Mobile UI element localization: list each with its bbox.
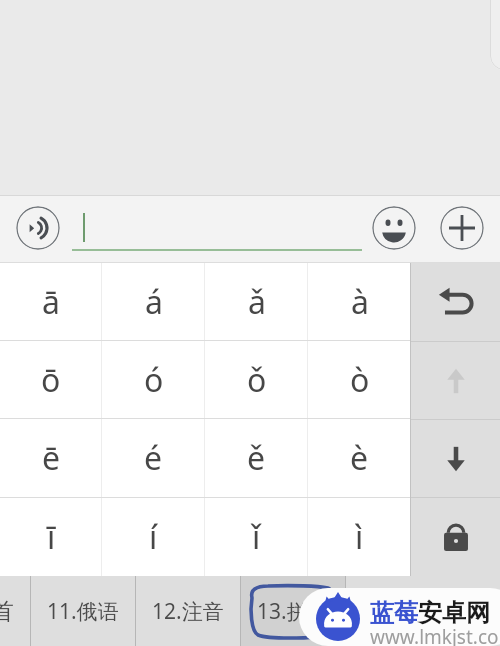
staticText: ó [144, 358, 164, 402]
button[interactable]: ǎ [205, 263, 308, 340]
staticText: è [350, 436, 369, 480]
button[interactable]: ě [205, 419, 308, 497]
staticText: ì [355, 515, 364, 559]
button[interactable]: ā [0, 263, 102, 340]
staticText: ē [42, 436, 61, 480]
button[interactable]: 12.注音 [136, 576, 240, 646]
button[interactable]: Lock [411, 498, 500, 576]
button[interactable]: Return [411, 263, 500, 342]
button[interactable]: ó [102, 341, 205, 418]
button[interactable]: ì [308, 498, 411, 576]
staticText: ǒ [247, 358, 267, 402]
staticText: 12.注音 [152, 597, 224, 626]
button[interactable]: ē [0, 419, 102, 497]
button[interactable]: í [102, 498, 205, 576]
staticText: ō [41, 358, 61, 402]
staticText: 13.拼音 [257, 597, 329, 626]
staticText: ā [42, 280, 60, 324]
button[interactable]: ò [308, 341, 411, 418]
button[interactable]: Page up [411, 342, 500, 420]
staticText: é [144, 436, 163, 480]
button[interactable]: ǐ [205, 498, 308, 576]
button[interactable]: Voice input [16, 206, 60, 250]
button[interactable]: ō [0, 341, 102, 418]
button[interactable]: Add [440, 206, 484, 250]
staticText: ò [350, 358, 370, 402]
staticText: à [351, 280, 369, 324]
button[interactable]: 13.拼音 [241, 576, 345, 646]
button[interactable]: é [102, 419, 205, 497]
staticText: 蓝莓 [370, 598, 418, 628]
button[interactable]: 11.俄语 [31, 576, 135, 646]
staticText: 11.俄语 [47, 597, 119, 626]
staticText: www.lmkjst.com [370, 624, 500, 646]
staticText: 安卓网 [418, 598, 490, 628]
button[interactable]: Page down [411, 420, 500, 498]
button[interactable]: Emoji [372, 206, 416, 250]
button[interactable]: ǒ [205, 341, 308, 418]
button[interactable]: à [308, 263, 411, 340]
button[interactable]: è [308, 419, 411, 497]
button[interactable]: á [102, 263, 205, 340]
button[interactable]: ī [0, 498, 102, 576]
staticText: á [145, 280, 163, 324]
staticText: ě [247, 436, 266, 480]
staticText: 首 [0, 597, 14, 626]
button[interactable]: 首 [0, 576, 30, 646]
staticText: ǐ [252, 515, 261, 559]
staticText: í [149, 515, 158, 559]
staticText: ǎ [248, 280, 266, 324]
staticText: ī [47, 515, 56, 559]
